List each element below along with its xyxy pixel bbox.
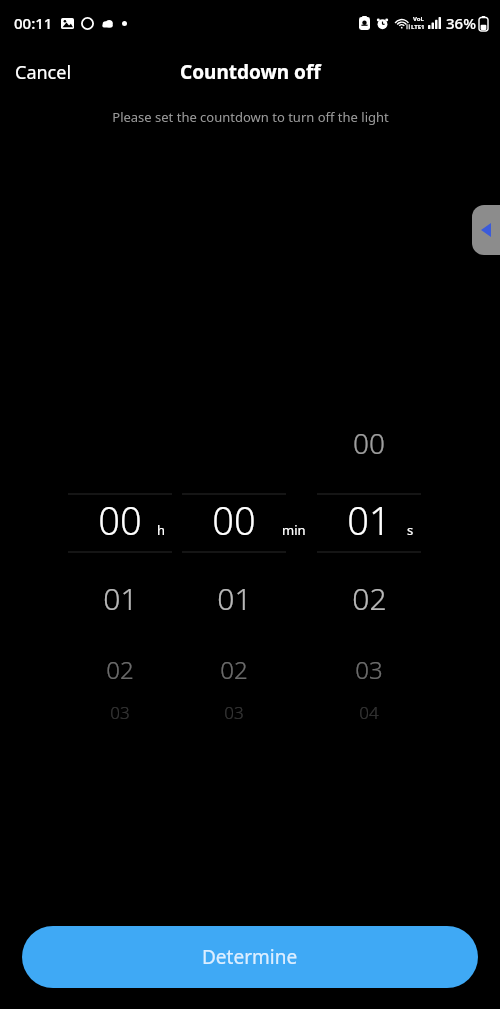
staticText: 00 <box>212 494 256 546</box>
staticText: 02 <box>220 653 248 686</box>
staticText: 00:11 <box>14 13 53 33</box>
button[interactable]: Determine <box>22 926 478 988</box>
staticText: 01 <box>347 494 391 546</box>
staticText: 03 <box>355 653 383 686</box>
staticText: VoL <box>413 15 424 23</box>
button[interactable]: Open side panel <box>472 205 500 255</box>
staticText: 01 <box>217 578 252 619</box>
staticText: 03 <box>110 701 130 724</box>
staticText: 02 <box>352 578 387 619</box>
staticText: 36% <box>446 13 476 33</box>
staticText: Countdown off <box>180 59 321 85</box>
staticText: Determine <box>202 944 298 970</box>
staticText: LTE1 <box>411 23 425 31</box>
staticText: Please set the countdown to turn off the… <box>112 108 389 126</box>
staticText: 00 <box>98 494 142 546</box>
staticText: min <box>282 521 306 539</box>
button[interactable]: Select min <box>179 415 289 735</box>
button[interactable]: Cancel <box>0 54 82 91</box>
staticText: 03 <box>224 701 244 724</box>
staticText: h <box>157 521 166 539</box>
staticText: s <box>407 521 414 539</box>
staticText: Cancel <box>15 60 72 85</box>
button[interactable]: Select h <box>65 415 175 735</box>
staticText: 00 <box>353 424 385 462</box>
staticText: 01 <box>103 578 138 619</box>
staticText: 02 <box>106 653 134 686</box>
staticText: 04 <box>359 701 379 724</box>
button[interactable]: Select s <box>314 415 424 735</box>
